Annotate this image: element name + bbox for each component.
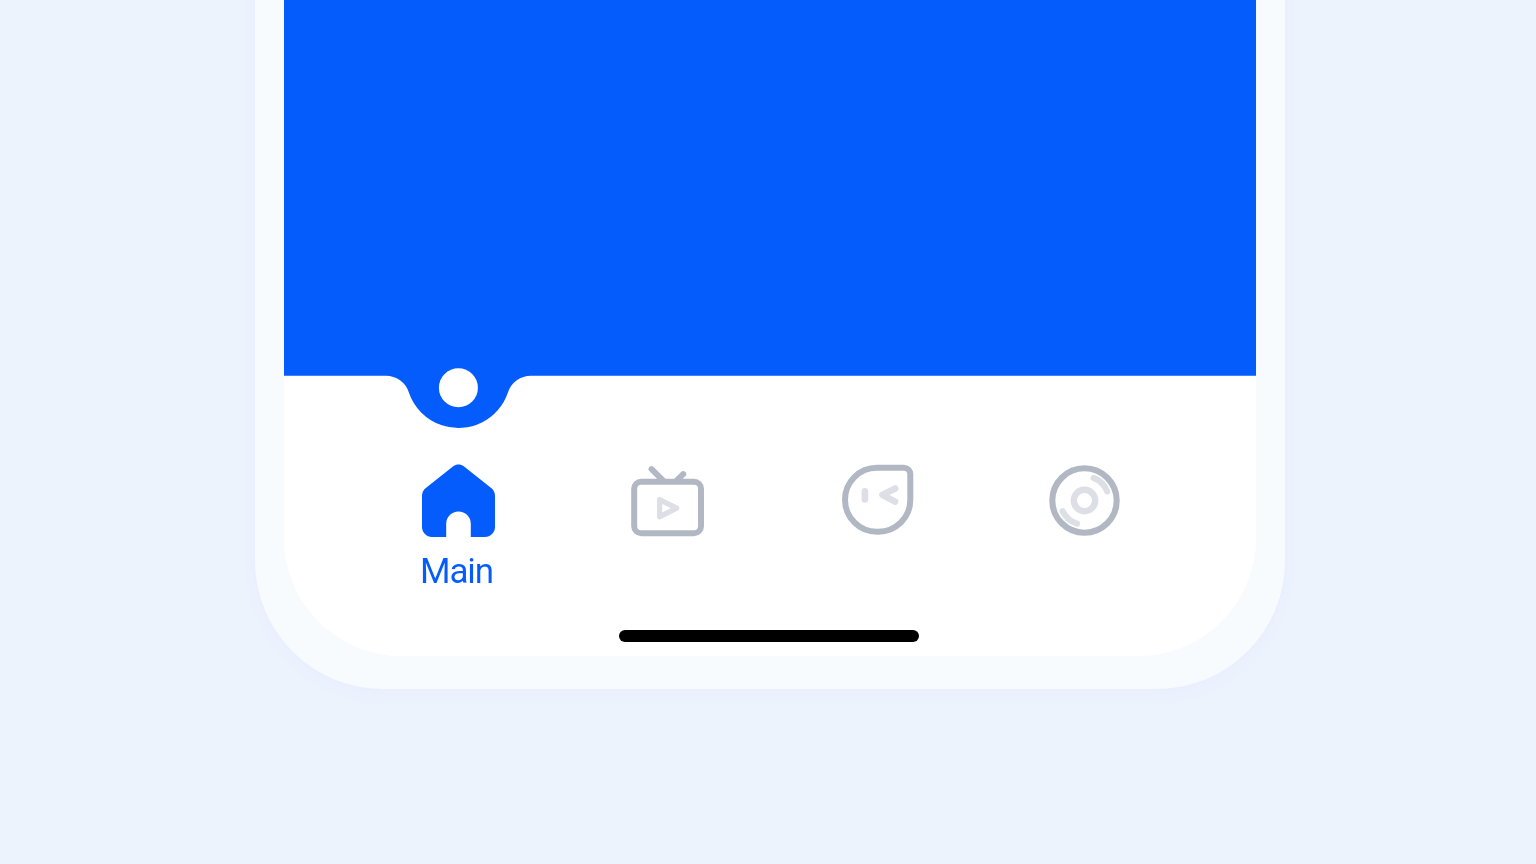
staticText: Main [420,551,493,588]
button[interactable]: Main [373,448,543,588]
button[interactable]: Add [386,315,531,436]
button[interactable]: Chat [792,448,962,588]
button[interactable]: Live TV [582,448,752,588]
button[interactable]: Music [999,448,1169,588]
